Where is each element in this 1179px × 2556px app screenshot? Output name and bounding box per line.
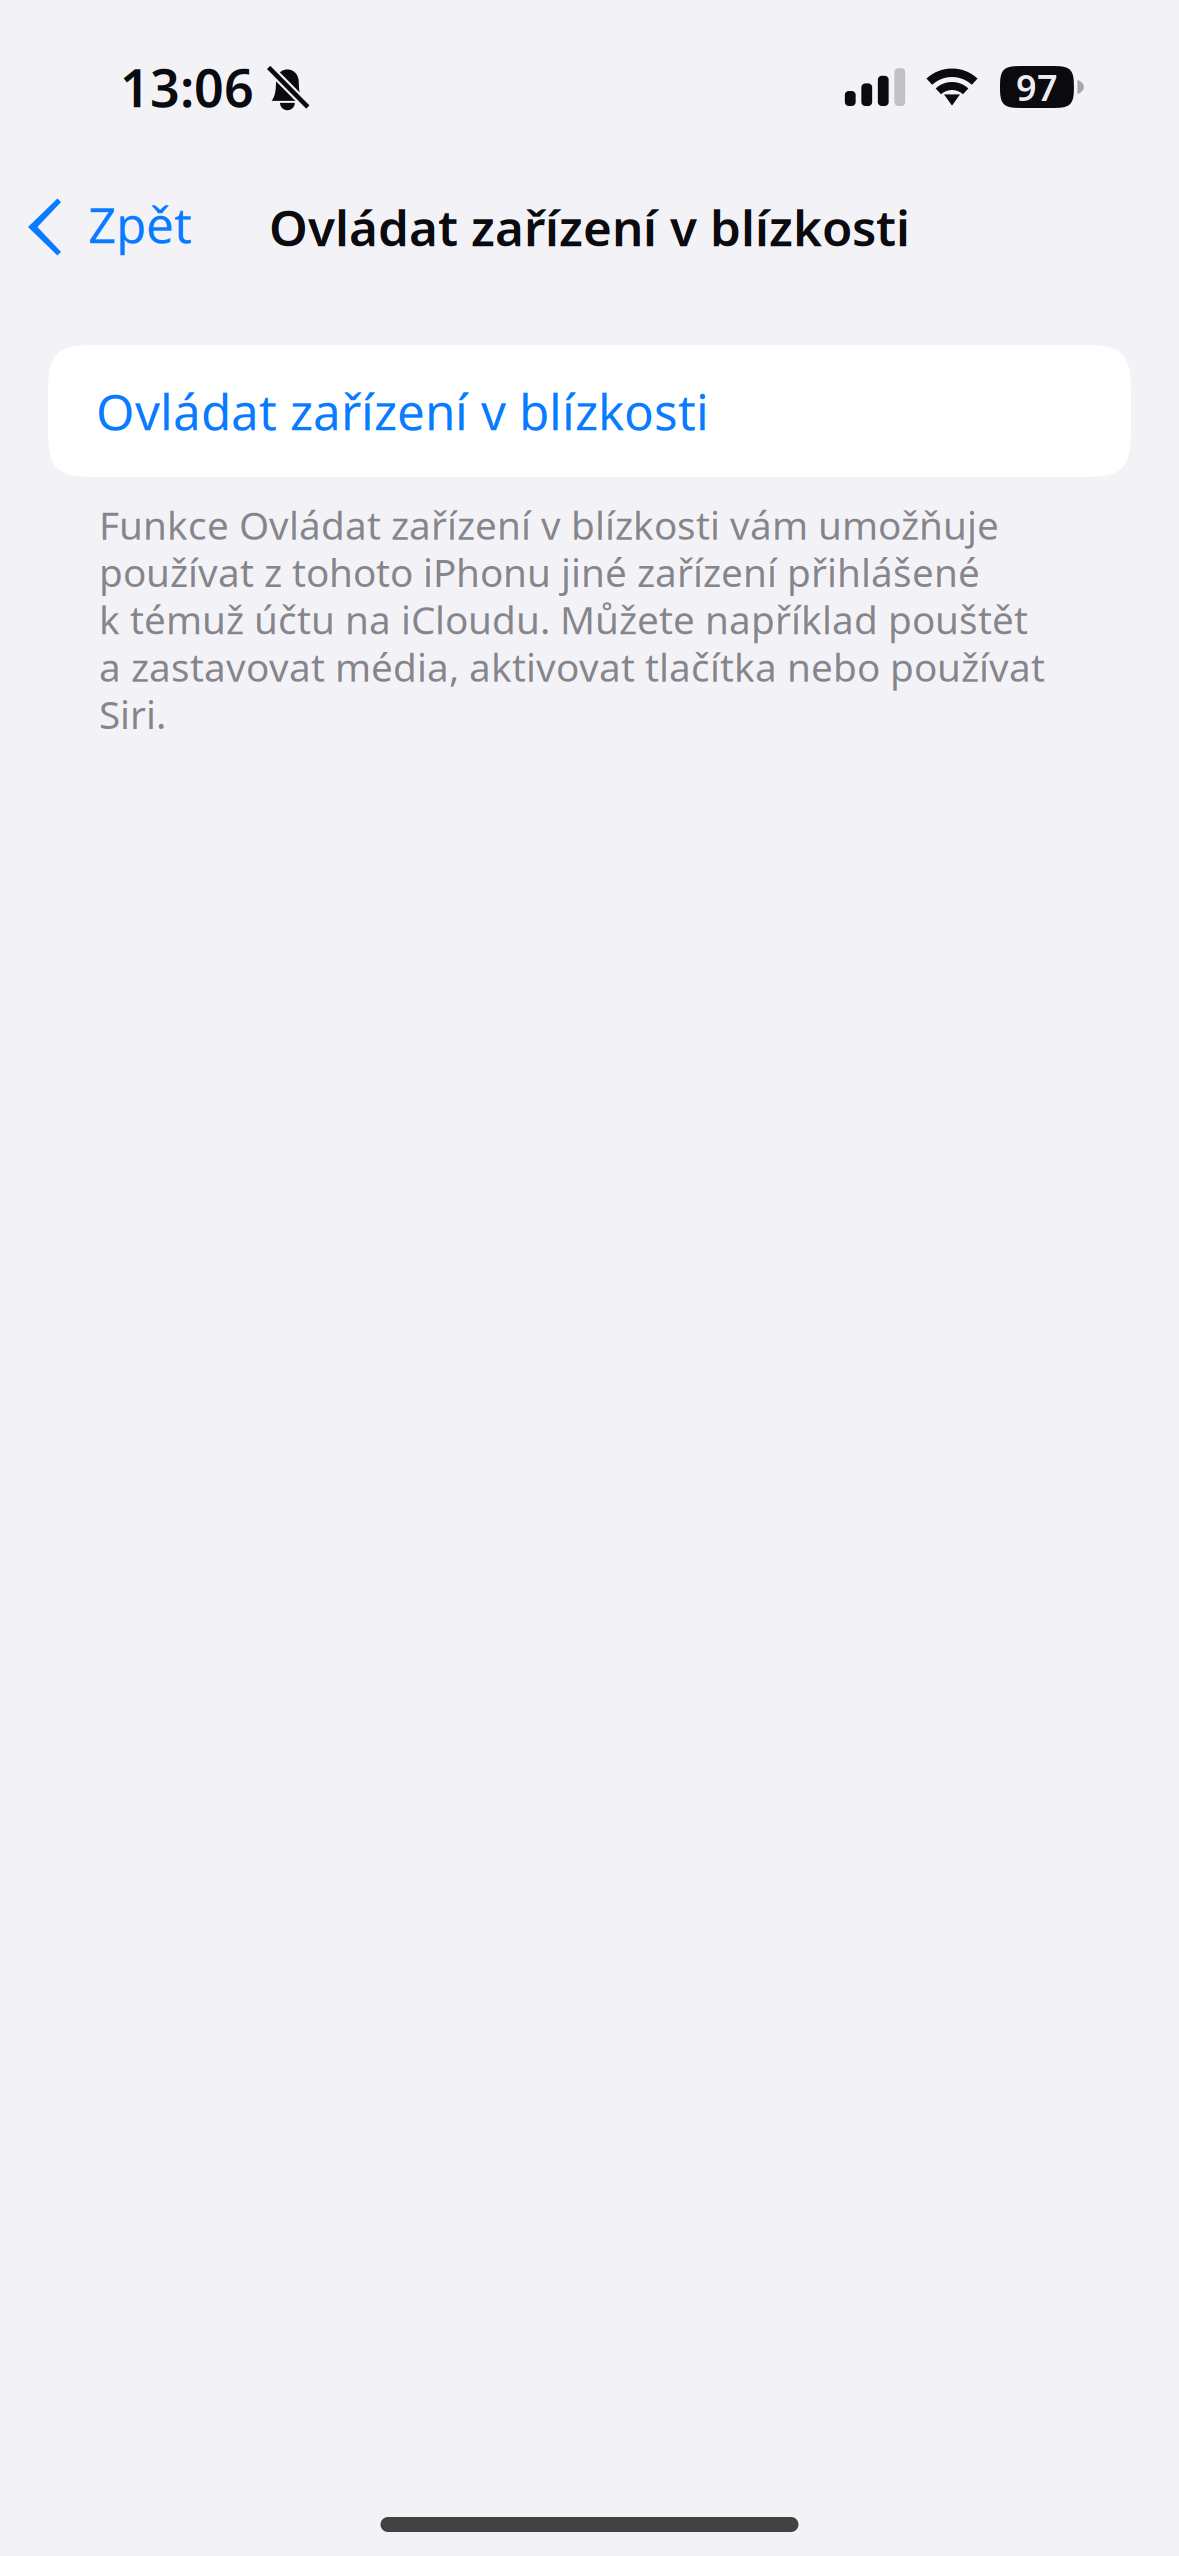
button[interactable]: Zpět <box>0 183 250 271</box>
staticText: Ovládat zařízení v blízkosti <box>269 194 910 260</box>
button[interactable]: Ovládat zařízení v blízkosti <box>48 345 1131 477</box>
staticText: Funkce Ovládat zařízení v blízkosti vám … <box>99 499 1045 740</box>
staticText: 97 <box>1016 63 1058 111</box>
staticText: 13:06 <box>120 52 254 122</box>
staticText: Ovládat zařízení v blízkosti <box>96 378 709 444</box>
staticText: Zpět <box>88 191 192 257</box>
